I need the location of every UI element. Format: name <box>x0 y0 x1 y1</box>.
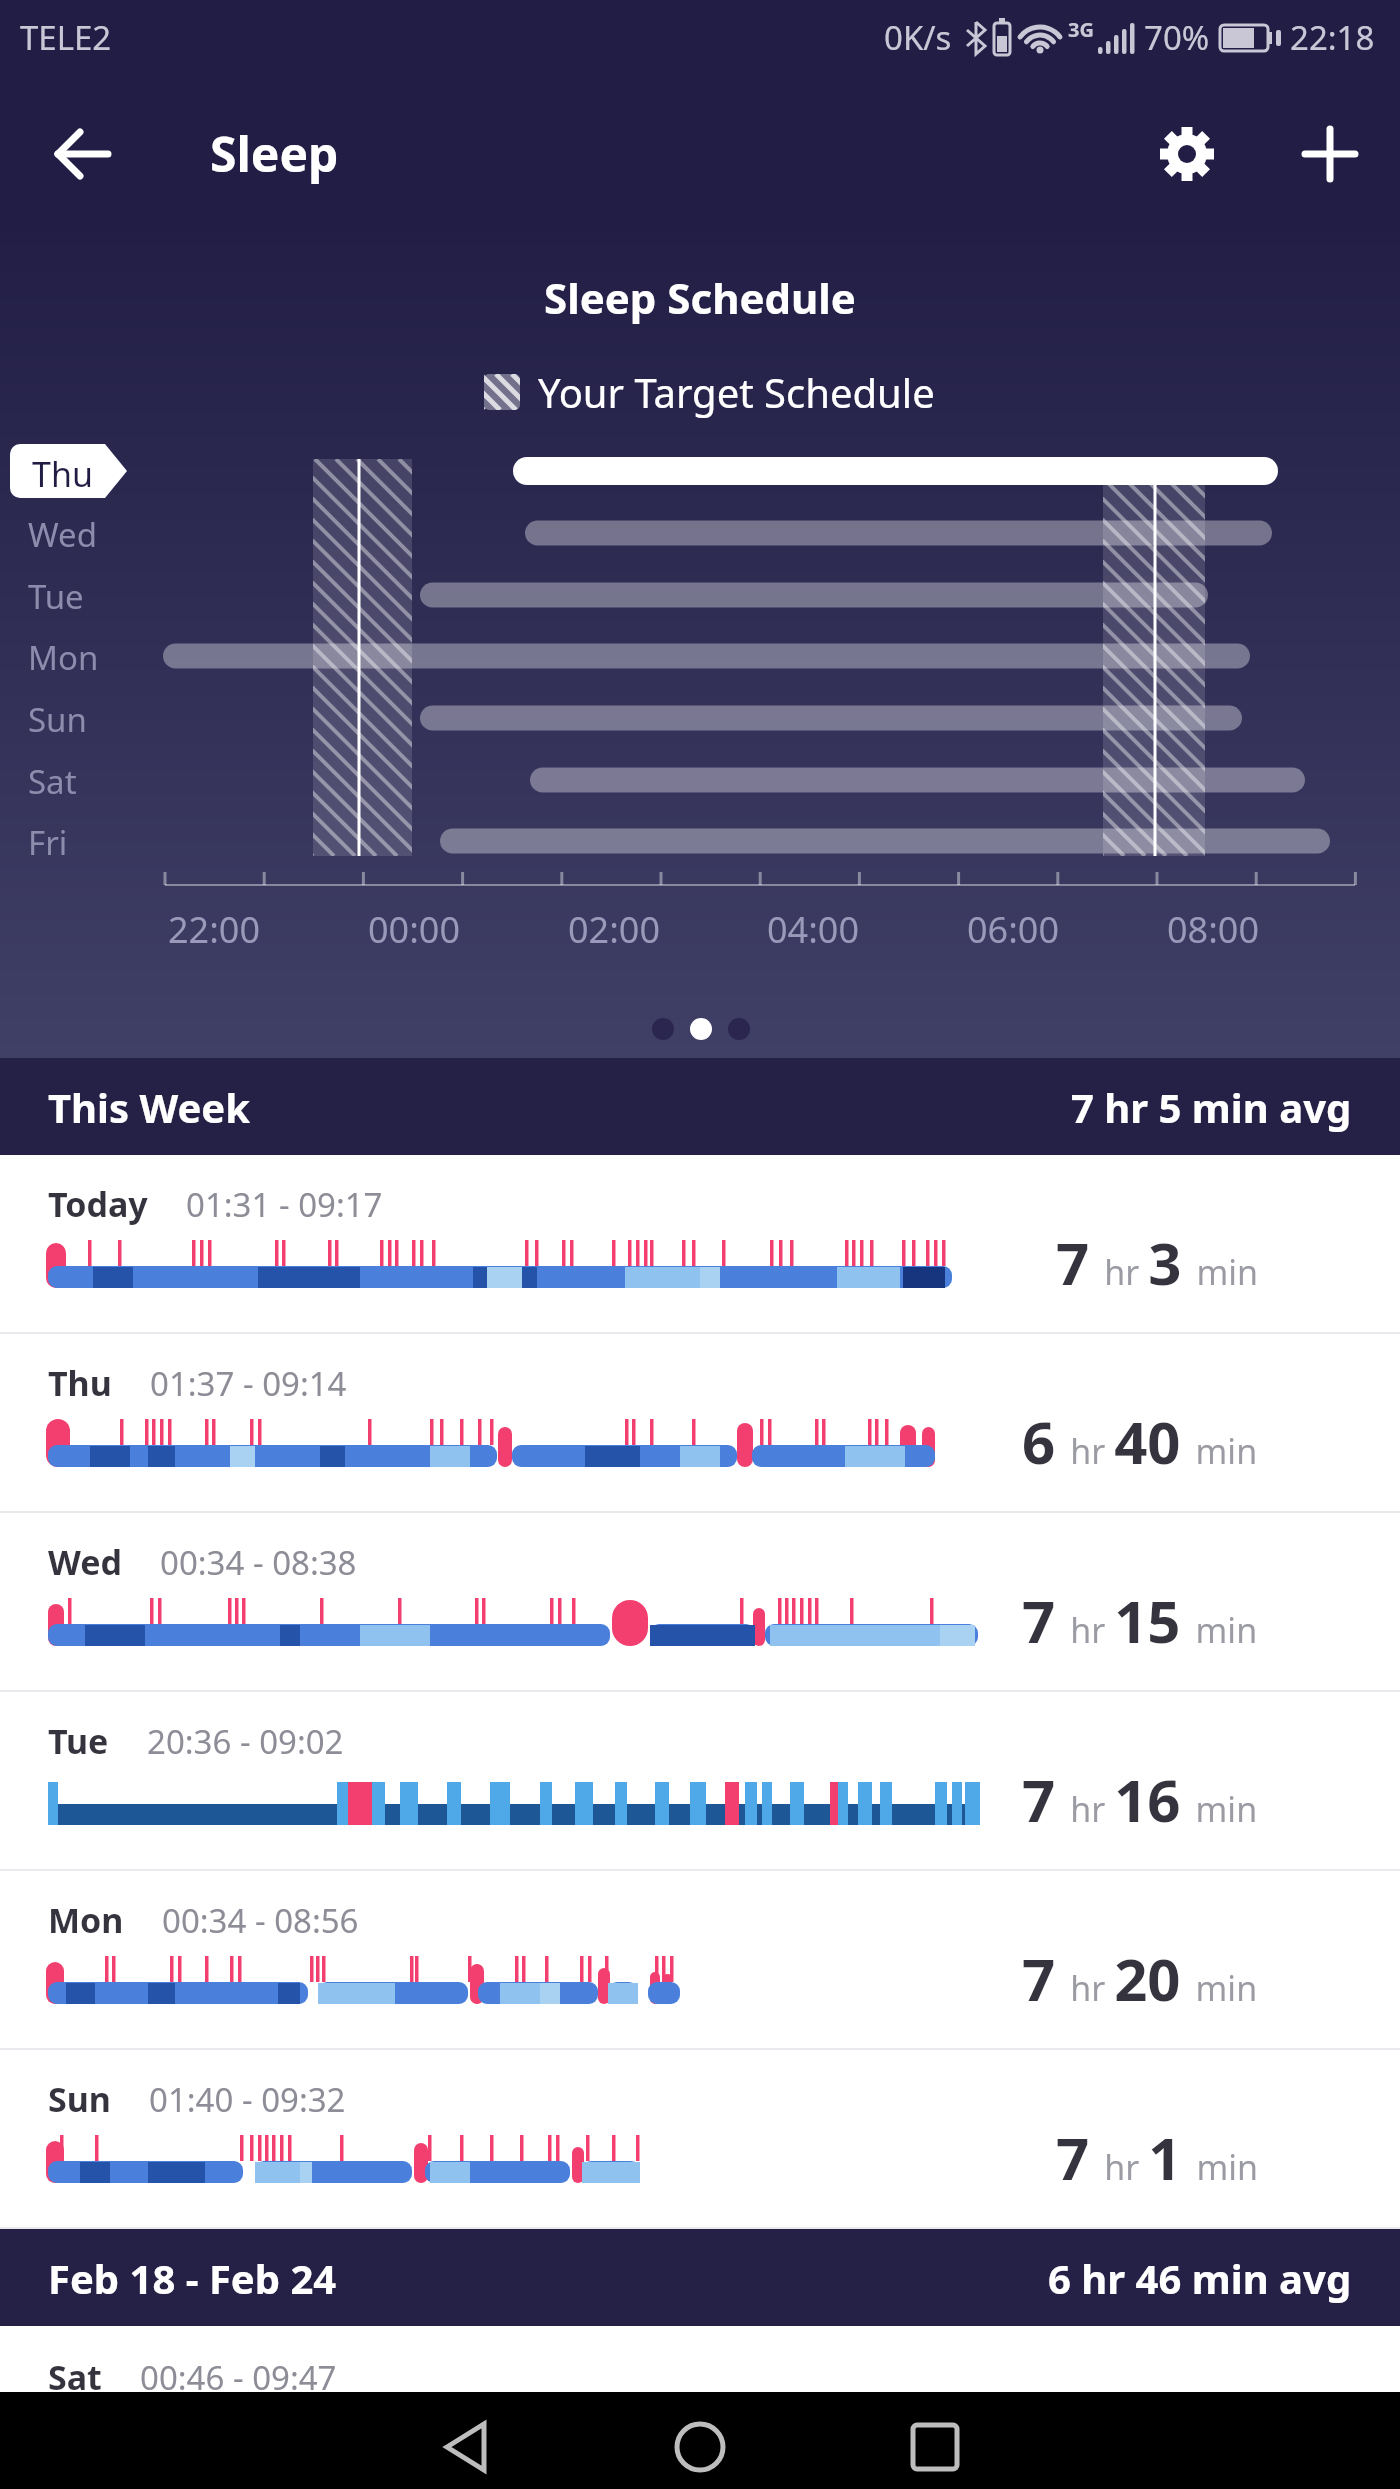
staticText: Your Target Schedule <box>538 365 935 419</box>
staticText: 06:00 <box>967 905 1060 954</box>
staticText: 22:18 <box>1290 15 1375 60</box>
staticText: 7 hr 16 min <box>1022 1760 1258 1839</box>
staticText: 01:31 - 09:17 <box>186 1182 383 1227</box>
staticText: 01:40 - 09:32 <box>149 2077 346 2122</box>
staticText: 02:00 <box>568 905 661 954</box>
button[interactable]: Thu <box>0 1334 1400 1513</box>
staticText: 7 hr 15 min <box>1022 1581 1258 1660</box>
button[interactable] <box>55 126 111 182</box>
button[interactable]: Today <box>0 1155 1400 1334</box>
button[interactable] <box>0 2392 466 2489</box>
staticText: Today <box>48 1181 148 1227</box>
staticText: 00:46 - 09:47 <box>140 2355 337 2400</box>
staticText: Wed <box>28 512 97 557</box>
button[interactable] <box>1301 125 1359 183</box>
staticText: 70% <box>1144 15 1210 60</box>
button[interactable] <box>466 2392 933 2489</box>
staticText: Sun <box>28 697 87 742</box>
staticText: Sun <box>48 2076 111 2122</box>
button[interactable]: Mon <box>0 1871 1400 2050</box>
staticText: Sleep Schedule <box>0 269 1400 326</box>
staticText: Sleep <box>210 121 339 186</box>
button[interactable]: Wed <box>0 1513 1400 1692</box>
staticText: 00:00 <box>368 905 461 954</box>
staticText: Fri <box>28 820 68 865</box>
button[interactable]: Sat <box>0 2326 1400 2392</box>
button[interactable]: Sun <box>0 2050 1400 2229</box>
staticText: Tue <box>48 1718 109 1764</box>
staticText: 7 hr 5 min avg <box>1071 1080 1352 1134</box>
staticText: Mon <box>48 1897 124 1943</box>
button[interactable]: Tue <box>0 1692 1400 1871</box>
staticText: 08:00 <box>1167 905 1260 954</box>
staticText: 6 hr 46 min avg <box>1048 2251 1352 2305</box>
staticText: 00:34 - 08:38 <box>160 1540 357 1585</box>
staticText: 7 hr 1 min <box>1056 2118 1258 2197</box>
staticText: Wed <box>48 1539 122 1585</box>
staticText: Thu <box>48 1360 112 1406</box>
staticText: Thu <box>32 451 93 497</box>
staticText: Tue <box>28 574 84 619</box>
staticText: Sat <box>48 2354 102 2400</box>
staticText: 20:36 - 09:02 <box>147 1719 344 1764</box>
staticText: 01:37 - 09:14 <box>150 1361 347 1406</box>
staticText: 00:34 - 08:56 <box>162 1898 359 1943</box>
staticText: 7 hr 3 min <box>1056 1223 1258 1302</box>
staticText: Feb 18 - Feb 24 <box>48 2251 337 2305</box>
staticText: This Week <box>48 1080 250 1134</box>
staticText: Mon <box>28 635 99 680</box>
staticText: 22:00 <box>168 905 261 954</box>
staticText: 3G <box>1068 16 1094 43</box>
staticText: TELE2 <box>20 15 112 60</box>
staticText: 04:00 <box>767 905 860 954</box>
staticText: 7 hr 20 min <box>1022 1939 1258 2018</box>
staticText: 0K/s <box>884 15 952 60</box>
button[interactable] <box>1157 124 1217 184</box>
button[interactable] <box>933 2392 1400 2489</box>
staticText: 6 hr 40 min <box>1022 1402 1258 1481</box>
staticText: Sat <box>28 759 77 804</box>
